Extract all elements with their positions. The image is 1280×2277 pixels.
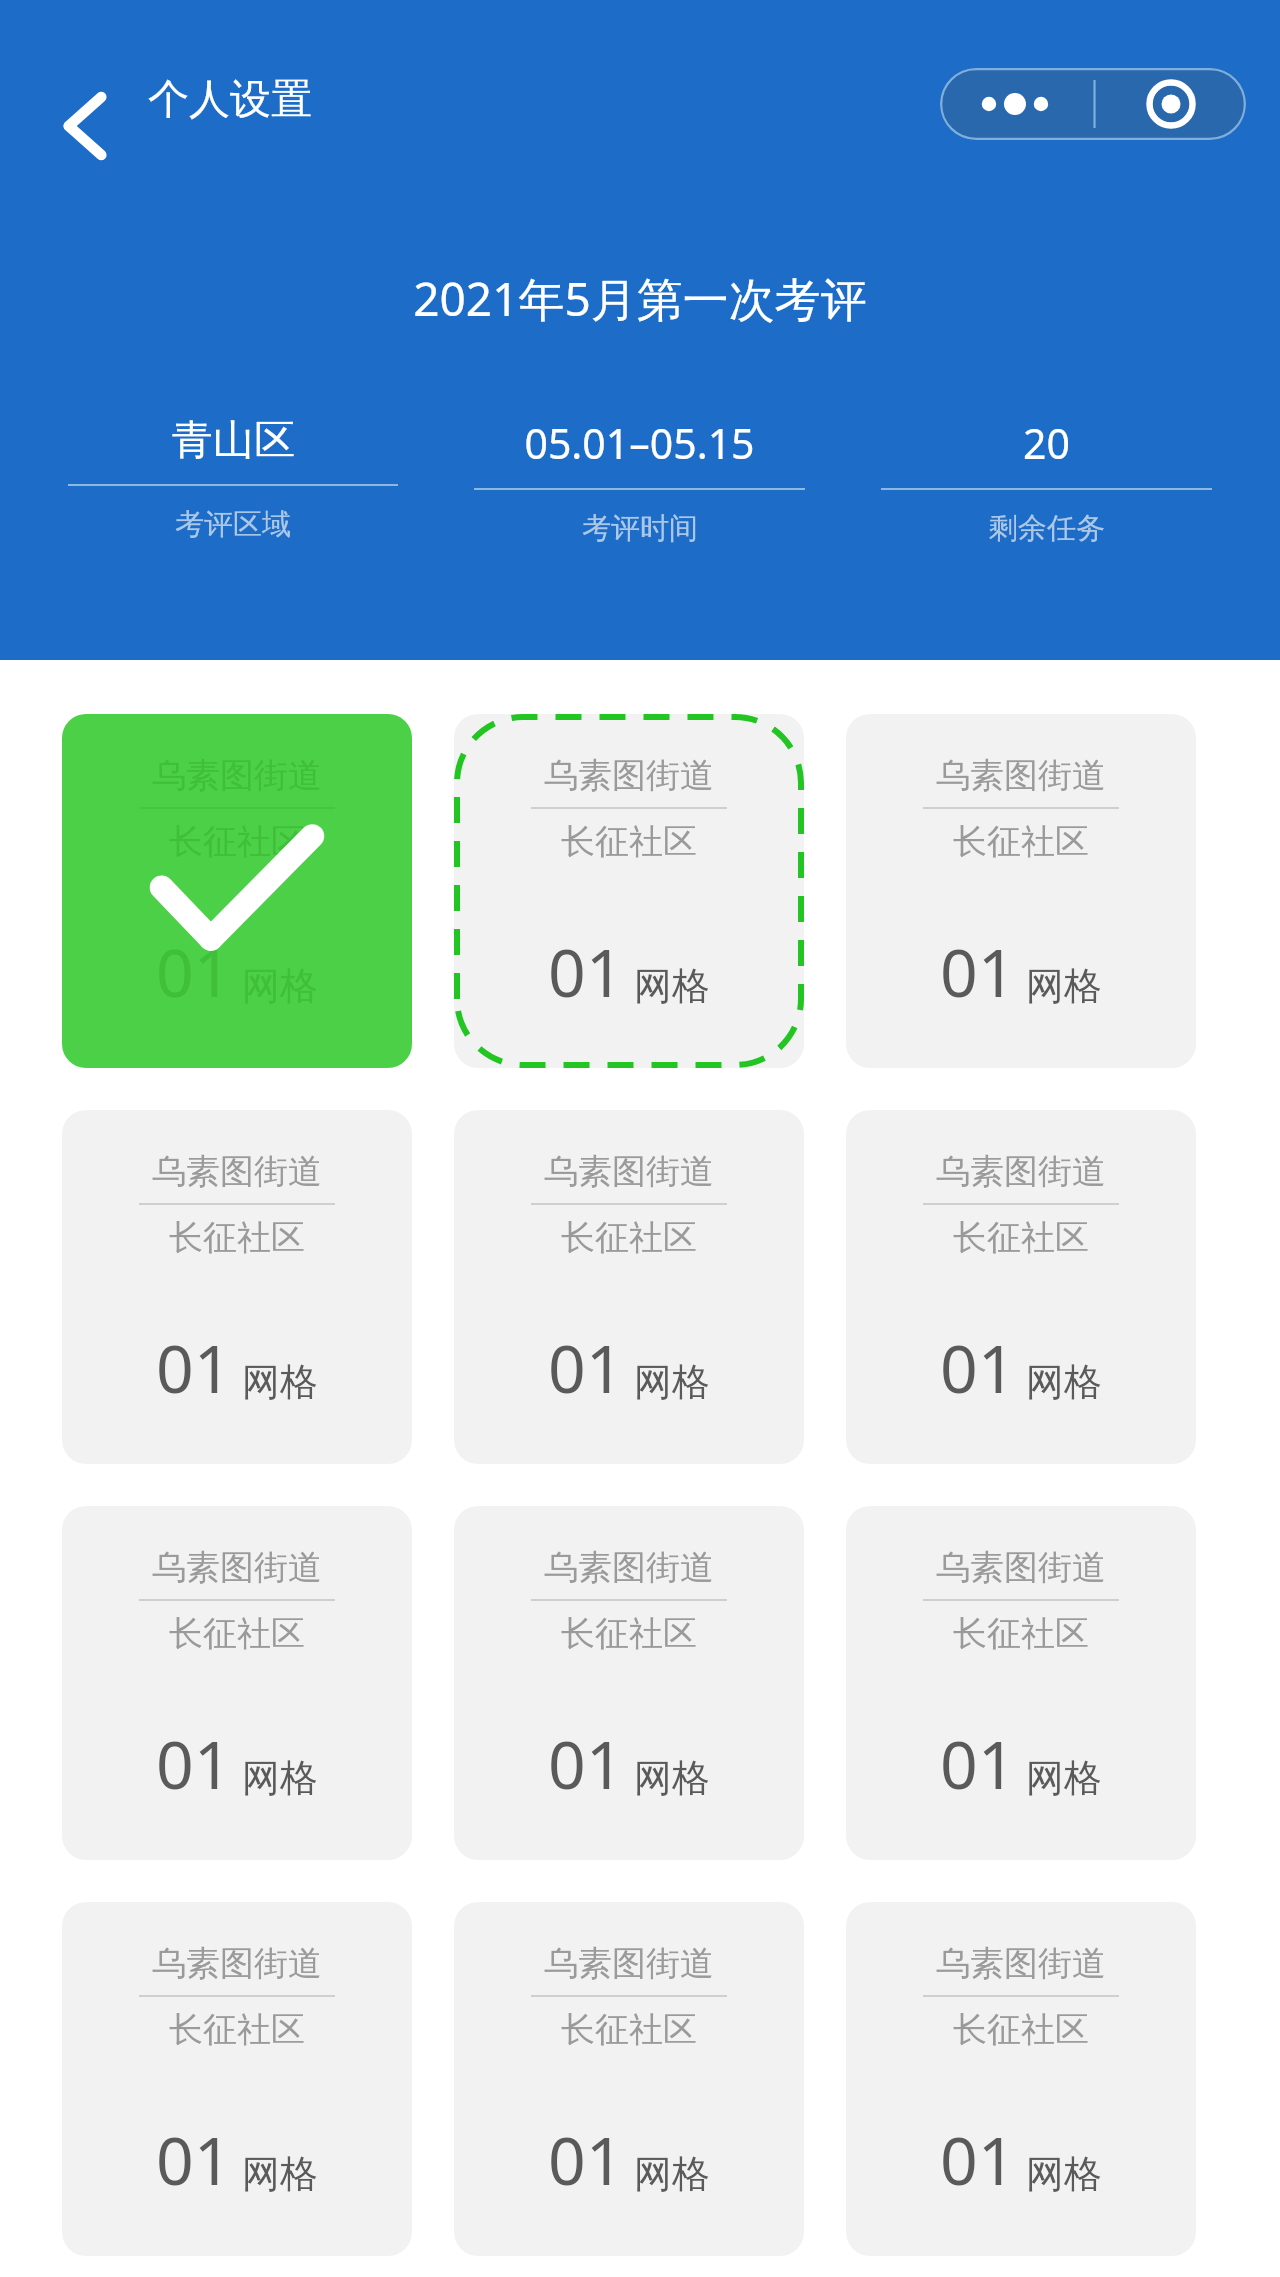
staticText: 01 xyxy=(940,926,1016,1016)
staticText: 长征社区 xyxy=(169,2008,305,2051)
button[interactable]: 05.01–05.15 xyxy=(436,415,843,547)
staticText: 01 xyxy=(940,2114,1016,2204)
button[interactable]: 乌素图街道 xyxy=(62,714,412,1068)
staticText: 长征社区 xyxy=(561,1216,697,1259)
staticText: 青山区 xyxy=(172,415,295,467)
button[interactable]: 乌素图街道 xyxy=(454,1902,804,2256)
button[interactable]: 青山区 xyxy=(30,415,436,543)
staticText: 网格 xyxy=(242,962,318,1010)
staticText: 长征社区 xyxy=(169,1612,305,1655)
staticText: 长征社区 xyxy=(953,1216,1089,1259)
button[interactable]: 乌素图街道 xyxy=(454,1506,804,1860)
button[interactable]: 乌素图街道 xyxy=(454,714,804,1068)
staticText: 网格 xyxy=(1026,1358,1102,1406)
staticText: 05.01–05.15 xyxy=(524,415,755,471)
staticText: 乌素图街道 xyxy=(544,1942,714,1985)
staticText: 乌素图街道 xyxy=(936,754,1106,797)
staticText: 网格 xyxy=(634,1358,710,1406)
staticText: 01 xyxy=(548,2114,624,2204)
staticText: 2021年5月第一次考评 xyxy=(0,267,1280,330)
staticText: 01 xyxy=(548,926,624,1016)
staticText: 乌素图街道 xyxy=(936,1150,1106,1193)
staticText: 网格 xyxy=(1026,1754,1102,1802)
staticText: 考评时间 xyxy=(582,510,698,547)
staticText: 乌素图街道 xyxy=(936,1942,1106,1985)
staticText: 01 xyxy=(548,1322,624,1412)
staticText: 01 xyxy=(156,926,232,1016)
staticText: 网格 xyxy=(634,2150,710,2198)
staticText: 长征社区 xyxy=(169,1216,305,1259)
button[interactable]: 乌素图街道 xyxy=(62,1506,412,1860)
staticText: 网格 xyxy=(242,2150,318,2198)
staticText: 网格 xyxy=(1026,2150,1102,2198)
staticText: 网格 xyxy=(242,1754,318,1802)
staticText: 乌素图街道 xyxy=(544,754,714,797)
button[interactable]: 乌素图街道 xyxy=(846,714,1196,1068)
staticText: 01 xyxy=(940,1718,1016,1808)
staticText: 01 xyxy=(548,1718,624,1808)
staticText: 乌素图街道 xyxy=(936,1546,1106,1589)
staticText: 长征社区 xyxy=(561,1612,697,1655)
button[interactable]: 乌素图街道 xyxy=(846,1902,1196,2256)
staticText: 乌素图街道 xyxy=(152,754,322,797)
staticText: 乌素图街道 xyxy=(544,1546,714,1589)
staticText: 长征社区 xyxy=(169,820,305,863)
button[interactable]: 乌素图街道 xyxy=(62,1110,412,1464)
staticText: 个人设置 xyxy=(148,74,312,126)
staticText: 网格 xyxy=(634,962,710,1010)
staticText: 长征社区 xyxy=(953,2008,1089,2051)
button[interactable]: More options xyxy=(940,68,1246,140)
staticText: 考评区域 xyxy=(175,506,291,543)
staticText: 长征社区 xyxy=(561,820,697,863)
staticText: 长征社区 xyxy=(953,820,1089,863)
staticText: 乌素图街道 xyxy=(152,1546,322,1589)
staticText: 01 xyxy=(156,1322,232,1412)
staticText: 01 xyxy=(940,1322,1016,1412)
staticText: 乌素图街道 xyxy=(152,1150,322,1193)
staticText: 剩余任务 xyxy=(989,510,1105,547)
button[interactable]: 乌素图街道 xyxy=(846,1506,1196,1860)
staticText: 网格 xyxy=(242,1358,318,1406)
staticText: 乌素图街道 xyxy=(152,1942,322,1985)
staticText: 长征社区 xyxy=(561,2008,697,2051)
button[interactable]: Back xyxy=(40,78,136,174)
staticText: 乌素图街道 xyxy=(544,1150,714,1193)
staticText: 网格 xyxy=(634,1754,710,1802)
staticText: 20 xyxy=(1023,415,1070,471)
staticText: 01 xyxy=(156,2114,232,2204)
staticText: 长征社区 xyxy=(953,1612,1089,1655)
button[interactable]: 20 xyxy=(843,415,1250,547)
staticText: 01 xyxy=(156,1718,232,1808)
button[interactable]: 乌素图街道 xyxy=(846,1110,1196,1464)
staticText: 网格 xyxy=(1026,962,1102,1010)
button[interactable]: 乌素图街道 xyxy=(62,1902,412,2256)
button[interactable]: 乌素图街道 xyxy=(454,1110,804,1464)
